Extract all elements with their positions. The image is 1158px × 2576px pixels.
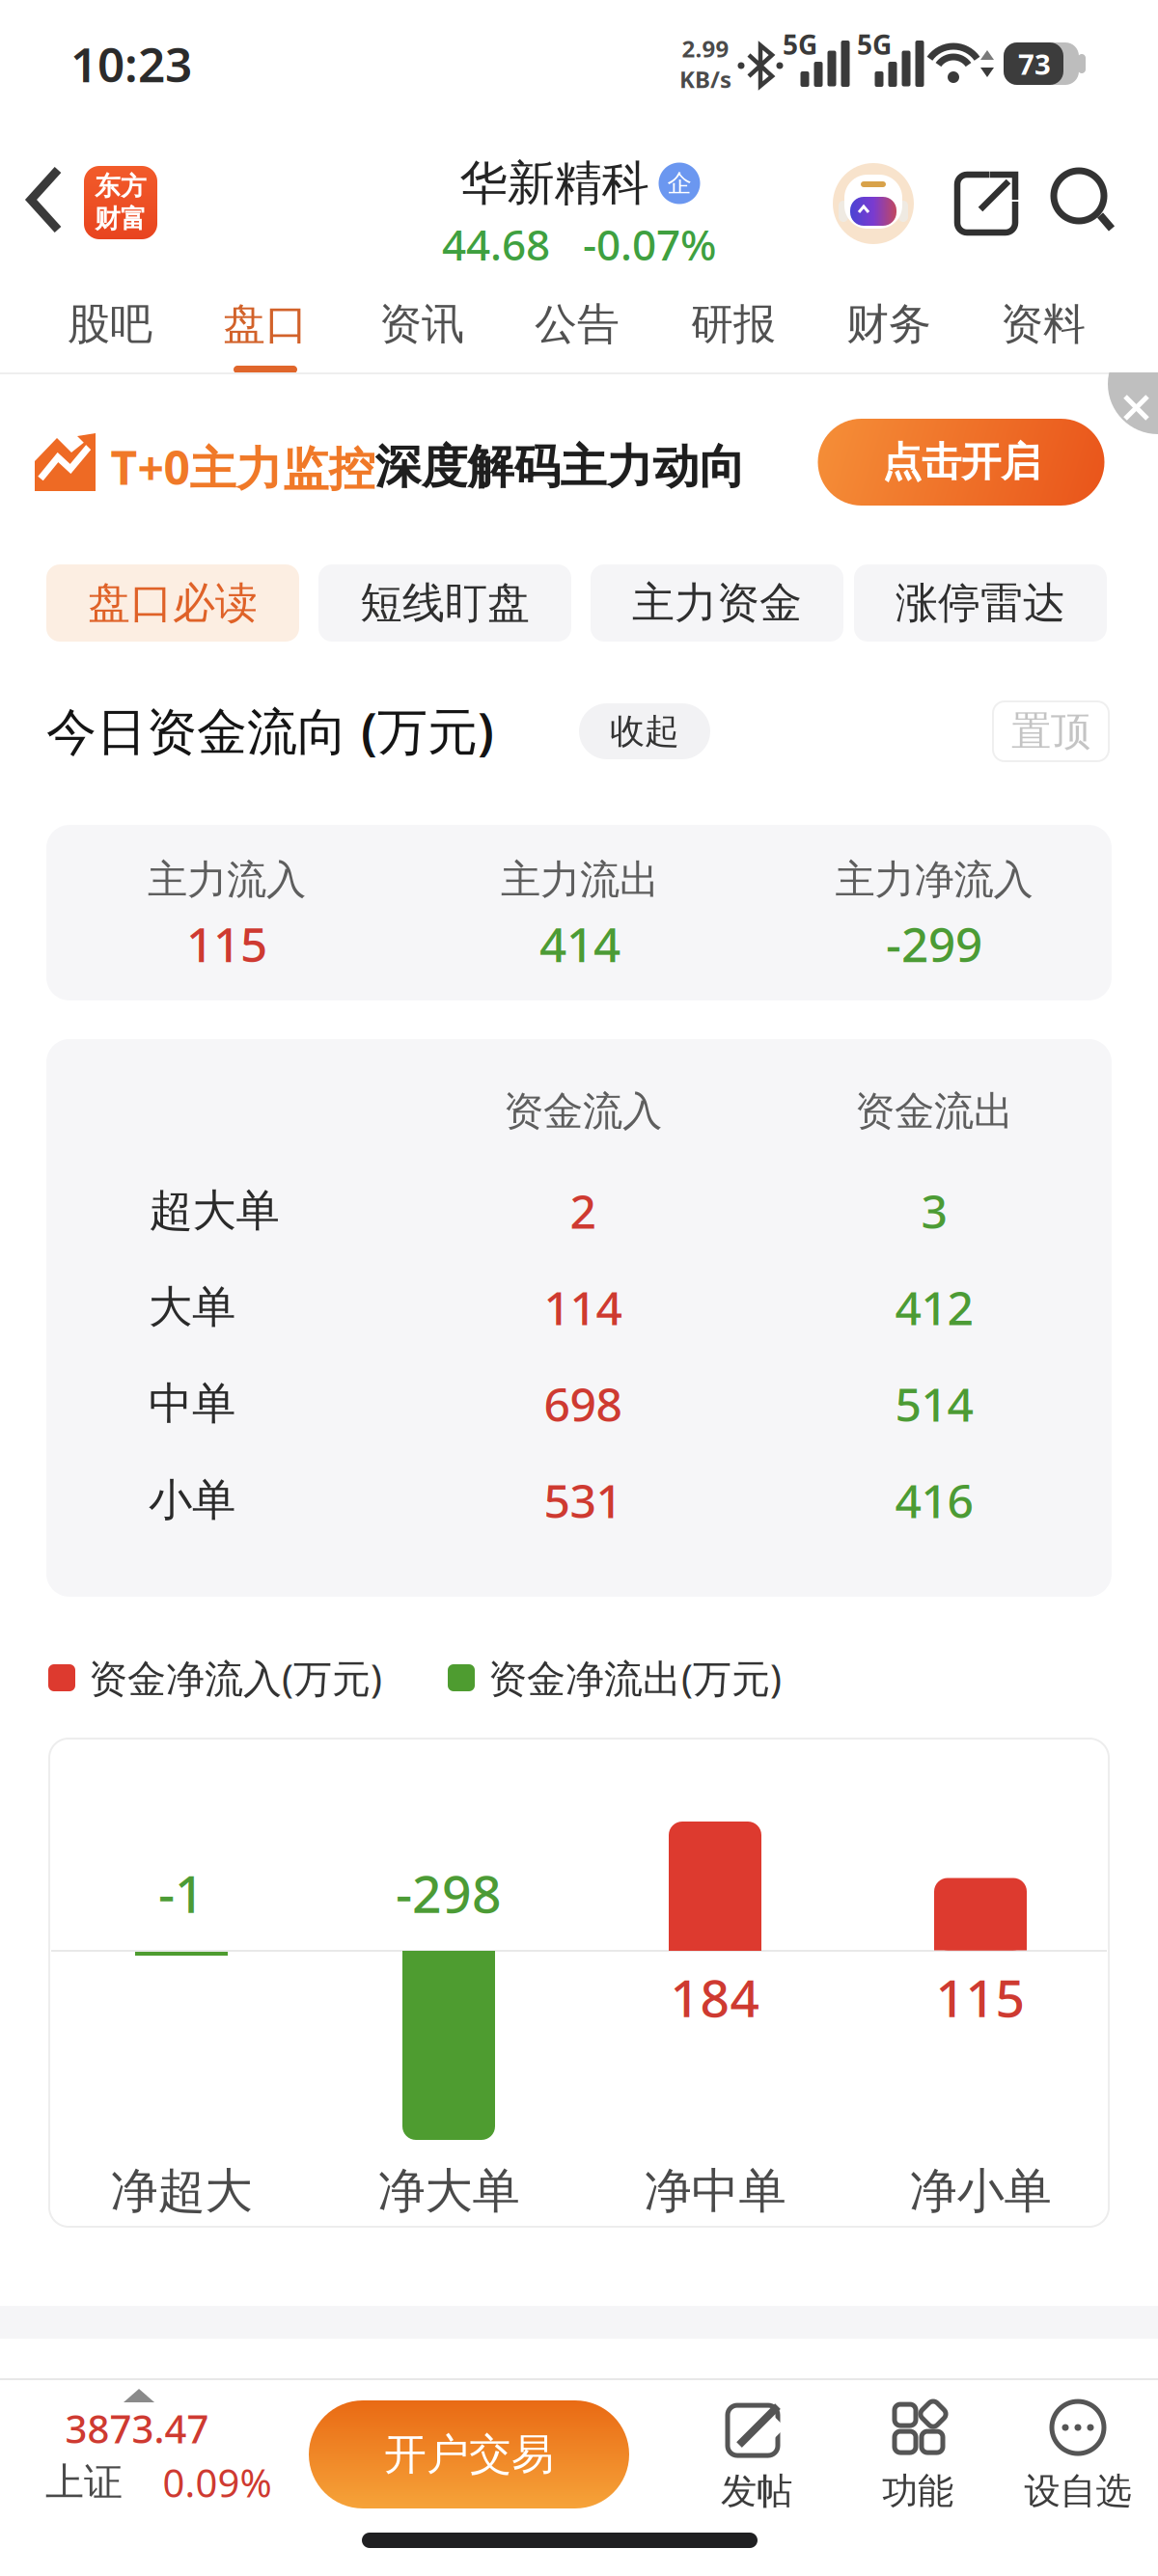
button[interactable]: 功能 [882, 2400, 953, 2513]
staticText: 3873.47 [65, 2403, 209, 2454]
button[interactable]: 上证指数 [0, 0, 1158, 2576]
staticText: 小单 [149, 1473, 235, 1527]
staticText: 企 [667, 168, 691, 198]
staticText: 点击开启 [882, 438, 1040, 487]
staticText: 上证 [45, 2459, 123, 2506]
staticText: 主力流入 [148, 855, 306, 904]
button[interactable]: 盘口必读 [46, 564, 299, 642]
staticText: 研报 [691, 298, 776, 350]
staticText: 开户交易 [384, 2428, 554, 2480]
staticText: 资金净流出(万元) [488, 1652, 782, 1703]
staticText: 414 [539, 912, 620, 975]
staticText: 主力净流入 [835, 855, 1033, 904]
staticText: 净中单 [644, 2162, 786, 2220]
staticText: 0.09% [163, 2457, 272, 2508]
staticText: 中单 [149, 1377, 235, 1431]
staticText: 华新精科 [460, 154, 649, 213]
button[interactable]: 置顶 [993, 701, 1109, 761]
staticText: -1 [158, 1859, 205, 1927]
staticText: 514 [895, 1373, 973, 1434]
staticText: 115 [936, 1963, 1025, 2031]
staticText: 净大单 [378, 2162, 520, 2220]
staticText: 44.68 [442, 216, 550, 272]
staticText: -299 [886, 912, 982, 975]
staticText: 412 [895, 1277, 973, 1338]
button[interactable]: 搜索 [1044, 162, 1121, 239]
staticText: 净超大 [110, 2162, 252, 2220]
staticText: 收起 [610, 710, 679, 753]
button[interactable]: 资讯 [354, 286, 489, 363]
staticText: 发帖 [721, 2469, 792, 2513]
button[interactable]: 盘口 [198, 286, 333, 363]
staticText: 股吧 [68, 298, 152, 350]
staticText: 盘口必读 [88, 577, 258, 629]
button[interactable]: 智能助手 [833, 163, 914, 244]
staticText: 净小单 [910, 2162, 1051, 2220]
staticText: 5G [857, 26, 892, 62]
staticText: 资金流入 [504, 1087, 662, 1136]
staticText: 5G [783, 26, 817, 62]
button[interactable]: 股吧 [42, 286, 178, 363]
staticText: 416 [895, 1469, 973, 1531]
staticText: 公告 [535, 298, 620, 350]
button[interactable]: 收起 [579, 703, 710, 759]
button[interactable]: 点击开启 [818, 419, 1104, 506]
staticText: 114 [544, 1277, 622, 1338]
button[interactable]: 涨停雷达 [854, 564, 1107, 642]
staticText: -0.07% [583, 216, 716, 272]
staticText: 资金净流入(万元) [89, 1652, 382, 1703]
button[interactable]: 东方财富 [84, 166, 157, 239]
button[interactable]: 关闭 [372, 372, 1158, 540]
staticText: 698 [544, 1373, 622, 1434]
staticText: 主力流出 [501, 855, 659, 904]
staticText: 3 [921, 1180, 947, 1241]
staticText: 东方 [95, 170, 147, 202]
staticText: 财务 [846, 298, 931, 350]
button[interactable]: 研报 [666, 286, 801, 363]
button[interactable]: 短线盯盘 [318, 564, 571, 642]
staticText: 大单 [149, 1280, 235, 1334]
staticText: 2.99 [682, 33, 729, 64]
button[interactable]: 主力资金 [591, 564, 843, 642]
staticText: 资料 [1001, 298, 1086, 350]
staticText: 10:23 [70, 32, 192, 95]
staticText: 资讯 [379, 298, 464, 350]
staticText: 73 [1018, 45, 1051, 82]
button[interactable]: 财务 [821, 286, 956, 363]
staticText: 今日资金流向 (万元) [46, 697, 494, 764]
button[interactable]: 分享 [948, 165, 1025, 242]
staticText: 财富 [95, 203, 147, 235]
staticText: KB/s [679, 64, 731, 94]
staticText: T+0主力监控 [110, 436, 375, 498]
button[interactable]: 发帖 [721, 2400, 792, 2513]
staticText: 功能 [882, 2469, 953, 2513]
button[interactable]: 公告 [510, 286, 645, 363]
button[interactable]: 设自选 [1024, 2400, 1131, 2513]
button[interactable]: 资料 [976, 286, 1111, 363]
staticText: 2 [570, 1180, 596, 1241]
staticText: 设自选 [1024, 2469, 1131, 2513]
staticText: -298 [396, 1859, 502, 1927]
staticText: 115 [186, 912, 267, 975]
staticText: 184 [670, 1963, 760, 2031]
staticText: 深度解码主力动向 [375, 438, 745, 495]
staticText: 资金流出 [855, 1087, 1013, 1136]
staticText: 置顶 [1011, 707, 1090, 756]
staticText: 主力资金 [632, 577, 802, 629]
staticText: 涨停雷达 [896, 577, 1065, 629]
staticText: 盘口 [223, 298, 308, 350]
button[interactable]: 返回 [26, 163, 65, 236]
staticText: 超大单 [149, 1184, 279, 1238]
staticText: 531 [544, 1469, 622, 1531]
staticText: 短线盯盘 [360, 577, 530, 629]
button[interactable]: 开户交易 [309, 2400, 629, 2508]
